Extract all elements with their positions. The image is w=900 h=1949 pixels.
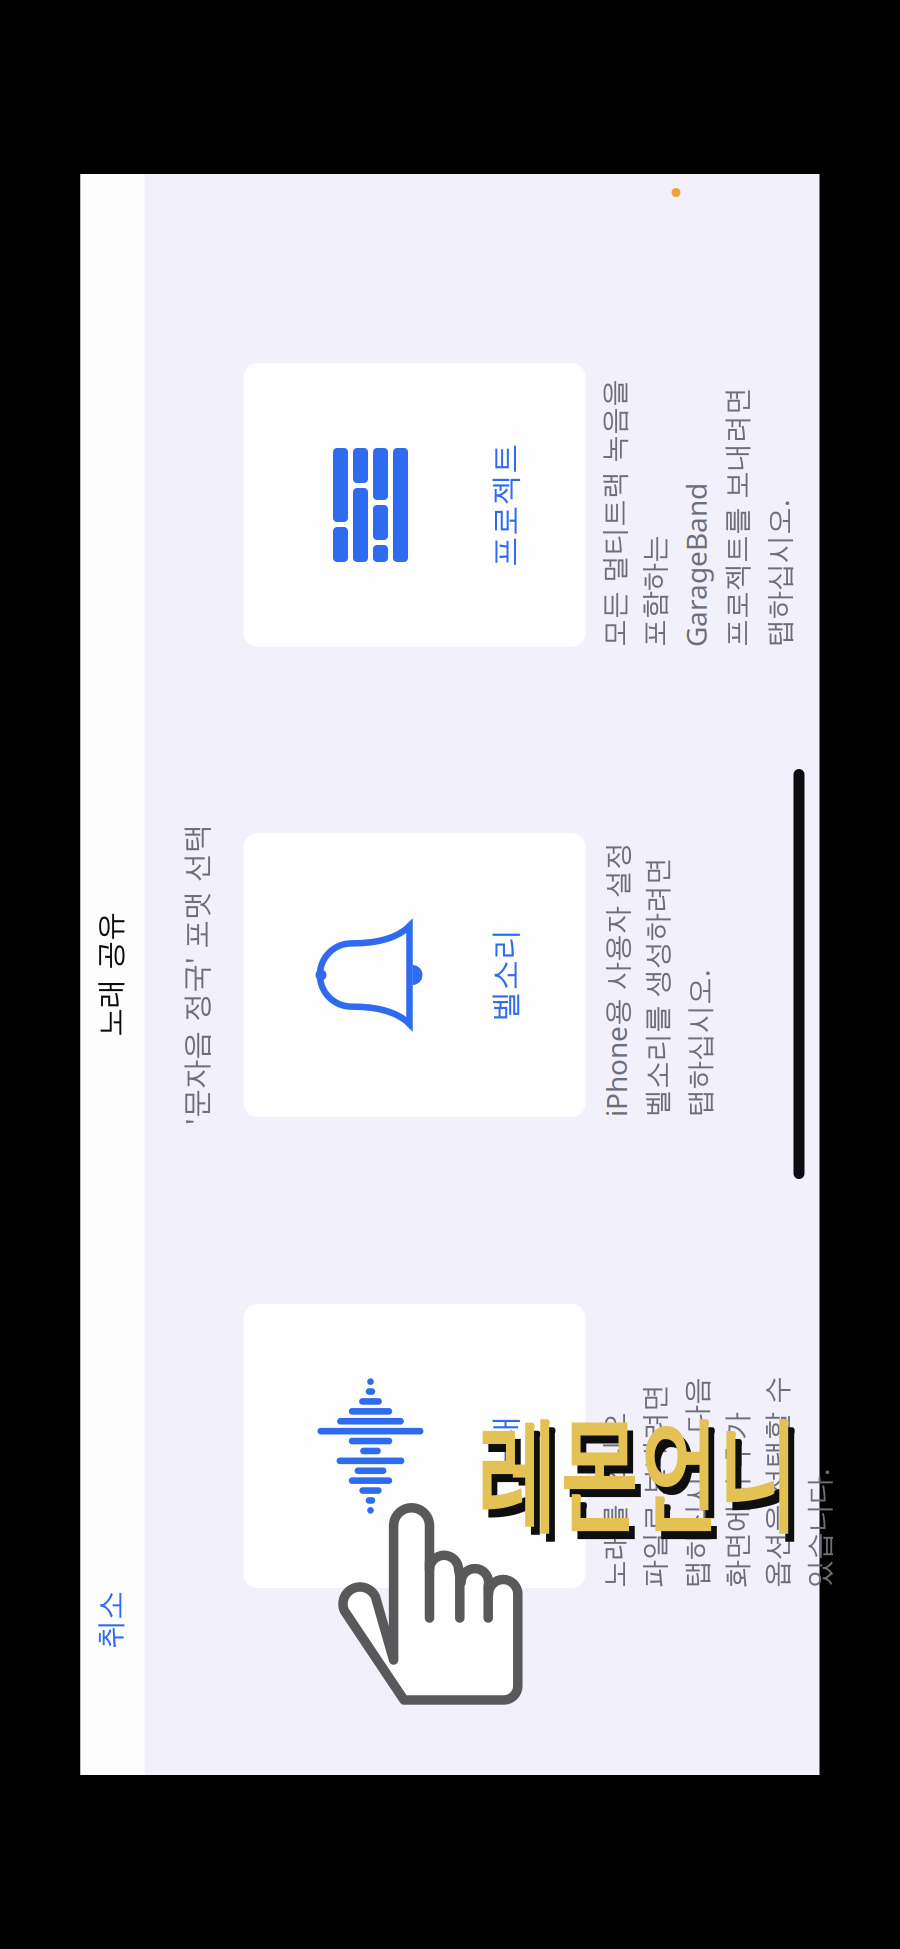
- staticText: 모든 멀티트랙 녹음을 포함하는 GarageBand 프로젝트를 보내려면 탭…: [777, 1122, 900, 1321]
- button[interactable]: 프로젝트: [777, 768, 900, 1110]
- staticText: 레몬언니: [487, 1408, 900, 1559]
- staticText: 레몬언니: [478, 1400, 900, 1551]
- staticText: 벨소리: [403, 1011, 496, 1049]
- button[interactable]: 노래: [0, 768, 120, 1110]
- staticText: 노래 공유: [387, 617, 512, 653]
- button[interactable]: 벨소리: [307, 768, 591, 1110]
